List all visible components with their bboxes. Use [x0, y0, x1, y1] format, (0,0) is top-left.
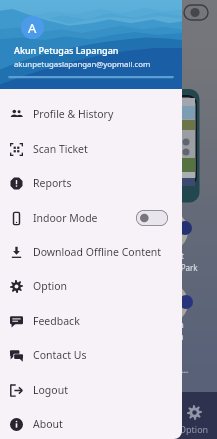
staticText: Download Offline Content [33, 245, 162, 259]
button[interactable]: Logout [0, 373, 182, 407]
button[interactable]: Indoor Mode [0, 201, 182, 235]
staticText: Scan Ticket [33, 142, 88, 156]
staticText: Akun Petugas Lapangan [14, 44, 119, 56]
button[interactable]: Option [0, 269, 182, 303]
staticText: al Park [172, 262, 198, 273]
button[interactable]: Contact Us [0, 338, 182, 372]
staticText: ut [176, 250, 184, 261]
staticText: na [174, 331, 184, 342]
staticText: A [28, 19, 37, 37]
button[interactable]: Profile & History [0, 97, 182, 131]
staticText: Logout [33, 383, 68, 397]
staticText: Reports [33, 176, 72, 190]
button[interactable]: Download Offline Content [0, 235, 182, 269]
staticText: Contact Us [33, 348, 87, 362]
staticText: About [33, 417, 63, 431]
staticText: Option [33, 279, 67, 293]
staticText: re... [174, 364, 189, 375]
button[interactable]: Reports [0, 166, 182, 200]
staticText: Option [179, 423, 209, 435]
button[interactable]: Feedback [0, 304, 182, 338]
button[interactable]: About [0, 407, 182, 439]
staticText: Indoor Mode [33, 211, 98, 225]
button[interactable]: Indoor Mode toggle [136, 210, 168, 226]
staticText: ra [176, 319, 184, 330]
button[interactable]: Option [172, 396, 216, 439]
staticText: akunpetugaslapangan@yopmail.com [14, 59, 151, 70]
staticText: Profile & History [33, 107, 114, 121]
staticText: Feedback [33, 314, 80, 328]
button[interactable]: Scan Ticket [0, 132, 182, 166]
